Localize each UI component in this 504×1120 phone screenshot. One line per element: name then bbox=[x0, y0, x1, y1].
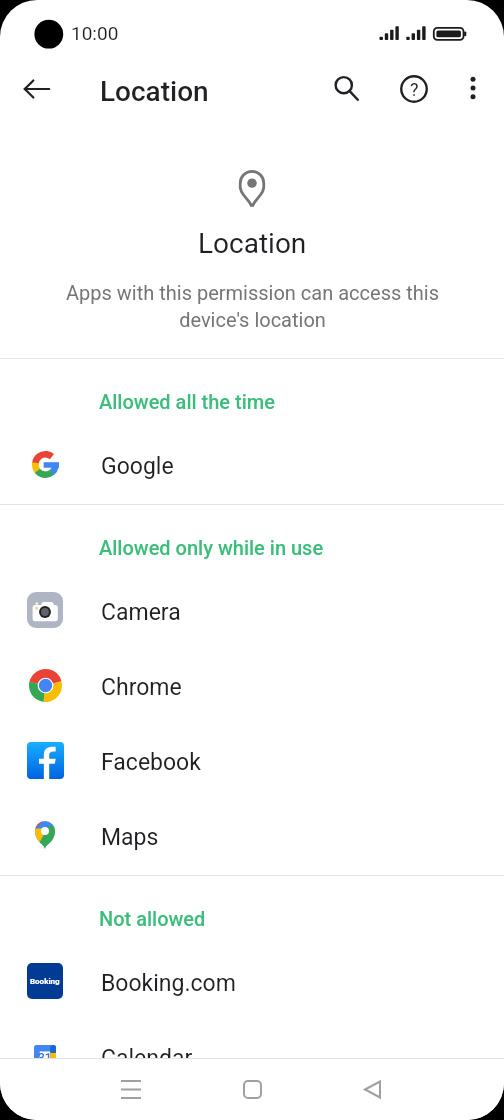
button[interactable]: Facebook bbox=[0, 725, 504, 800]
staticText: Booking.com bbox=[101, 970, 236, 997]
button[interactable]: 31 bbox=[0, 1021, 504, 1096]
staticText: ? bbox=[410, 79, 419, 100]
button[interactable]: Booking bbox=[0, 946, 504, 1021]
button[interactable]: Search bbox=[322, 64, 370, 112]
staticText: Allowed all the time bbox=[99, 390, 275, 413]
button[interactable]: Chrome bbox=[0, 650, 504, 725]
button[interactable]: Camera bbox=[0, 575, 504, 650]
button[interactable]: Back bbox=[348, 1065, 396, 1113]
staticText: Maps bbox=[101, 824, 159, 851]
button[interactable]: Home bbox=[228, 1065, 276, 1113]
staticText: Chrome bbox=[101, 674, 182, 701]
staticText: Booking bbox=[30, 977, 60, 986]
staticText: Calendar bbox=[101, 1045, 193, 1072]
staticText: Apps with this permission can access thi… bbox=[66, 281, 439, 332]
button[interactable]: Back bbox=[13, 65, 61, 113]
staticText: Google bbox=[101, 453, 174, 480]
staticText: 31 bbox=[38, 1051, 52, 1065]
staticText: Not allowed bbox=[99, 907, 206, 930]
button[interactable]: Maps bbox=[0, 800, 504, 875]
button[interactable]: Recent apps bbox=[107, 1065, 155, 1113]
button[interactable]: Google bbox=[0, 429, 504, 504]
staticText: Location bbox=[100, 75, 209, 108]
button[interactable]: Help bbox=[390, 65, 438, 113]
staticText: Camera bbox=[101, 599, 181, 626]
staticText: Allowed only while in use bbox=[99, 536, 324, 559]
staticText: Facebook bbox=[101, 749, 201, 776]
staticText: Location bbox=[198, 227, 307, 260]
button[interactable]: More options bbox=[449, 64, 497, 112]
staticText: 10:00 bbox=[71, 22, 119, 44]
